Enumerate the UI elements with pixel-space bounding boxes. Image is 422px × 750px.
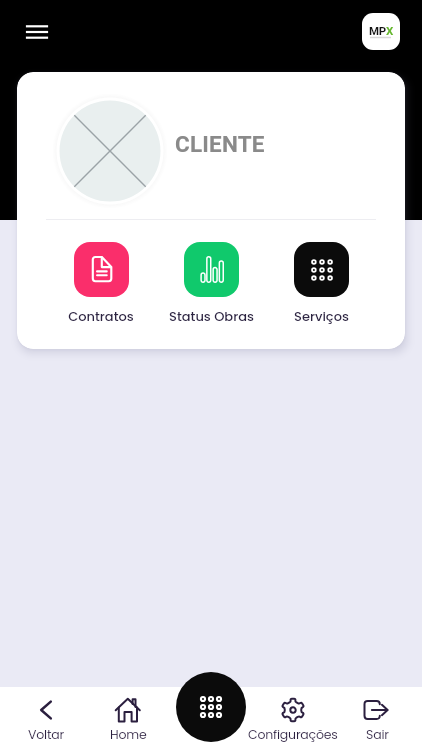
- staticText: Voltar: [28, 726, 64, 743]
- button[interactable]: Apps: [176, 672, 246, 742]
- staticText: Status Obras: [169, 307, 254, 325]
- button[interactable]: Configurações: [233, 687, 353, 750]
- staticText: Sair: [366, 726, 389, 743]
- staticText: X: [386, 24, 394, 37]
- button[interactable]: MPX logo: [362, 13, 400, 50]
- staticText: MP: [369, 24, 386, 37]
- staticText: Contratos: [68, 307, 134, 325]
- staticText: Serviços: [294, 307, 349, 325]
- button[interactable]: Home: [68, 687, 188, 750]
- button[interactable]: Status Obras: [156, 242, 266, 325]
- button[interactable]: Serviços: [266, 242, 376, 325]
- button[interactable]: Sair: [317, 687, 422, 750]
- button[interactable]: Menu: [19, 14, 55, 50]
- button[interactable]: Voltar: [0, 687, 106, 750]
- staticText: Configurações: [248, 726, 338, 743]
- button[interactable]: Contratos: [46, 242, 156, 325]
- staticText: CLIENTE: [175, 131, 265, 157]
- staticText: Home: [110, 726, 147, 743]
